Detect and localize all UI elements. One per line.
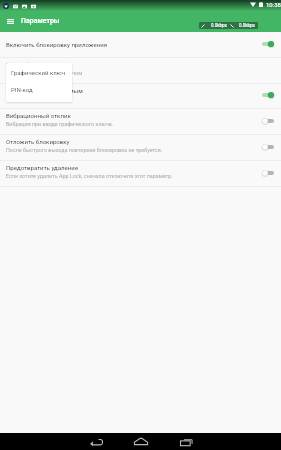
- staticText: Сделать ключ невидимым: [6, 87, 83, 94]
- button[interactable]: Предотвратить удаление: [0, 161, 281, 187]
- staticText: 0.0kbps: [239, 23, 255, 28]
- staticText: После быстрого выхода повторная блокиров…: [6, 147, 163, 153]
- staticText: Если хотите удалить App Lock, сначала от…: [6, 173, 173, 179]
- button[interactable]: Home: [118, 433, 163, 450]
- staticText: Защита графическим ключом: [6, 70, 83, 76]
- staticText: Предотвратить удаление: [6, 164, 79, 171]
- button[interactable]: Отложить блокировку: [0, 135, 281, 161]
- button[interactable]: Off: [260, 142, 276, 152]
- button[interactable]: Off: [260, 116, 276, 126]
- button[interactable]: Off: [260, 168, 276, 178]
- staticText: Метод блокировки: [6, 61, 61, 68]
- button[interactable]: Графический ключ: [6, 64, 72, 81]
- button[interactable]: Сделать ключ невидимым: [0, 84, 281, 109]
- staticText: Графический ключ: [11, 69, 66, 76]
- staticText: Включить блокировку приложения: [6, 41, 108, 48]
- button[interactable]: Network speed: [199, 22, 258, 29]
- button[interactable]: Recent apps: [164, 433, 208, 450]
- button[interactable]: On: [260, 39, 276, 49]
- button[interactable]: Включить блокировку приложения: [0, 32, 281, 58]
- button[interactable]: On: [260, 90, 276, 100]
- staticText: Параметры: [21, 17, 60, 25]
- button[interactable]: PIN-код: [6, 81, 72, 98]
- staticText: Вибрация при вводе графического ключа.: [6, 121, 114, 127]
- button[interactable]: Back: [74, 433, 118, 450]
- button[interactable]: Метод блокировки: [0, 58, 281, 84]
- staticText: Отложить блокировку: [6, 138, 70, 145]
- button[interactable]: Open navigation menu: [0, 12, 21, 30]
- staticText: Вибрационный отклик: [6, 112, 71, 119]
- button[interactable]: Вибрационный отклик: [0, 109, 281, 135]
- staticText: PIN-код: [11, 86, 33, 93]
- staticText: 0.0kbps: [211, 23, 227, 28]
- staticText: 10:38: [266, 1, 281, 8]
